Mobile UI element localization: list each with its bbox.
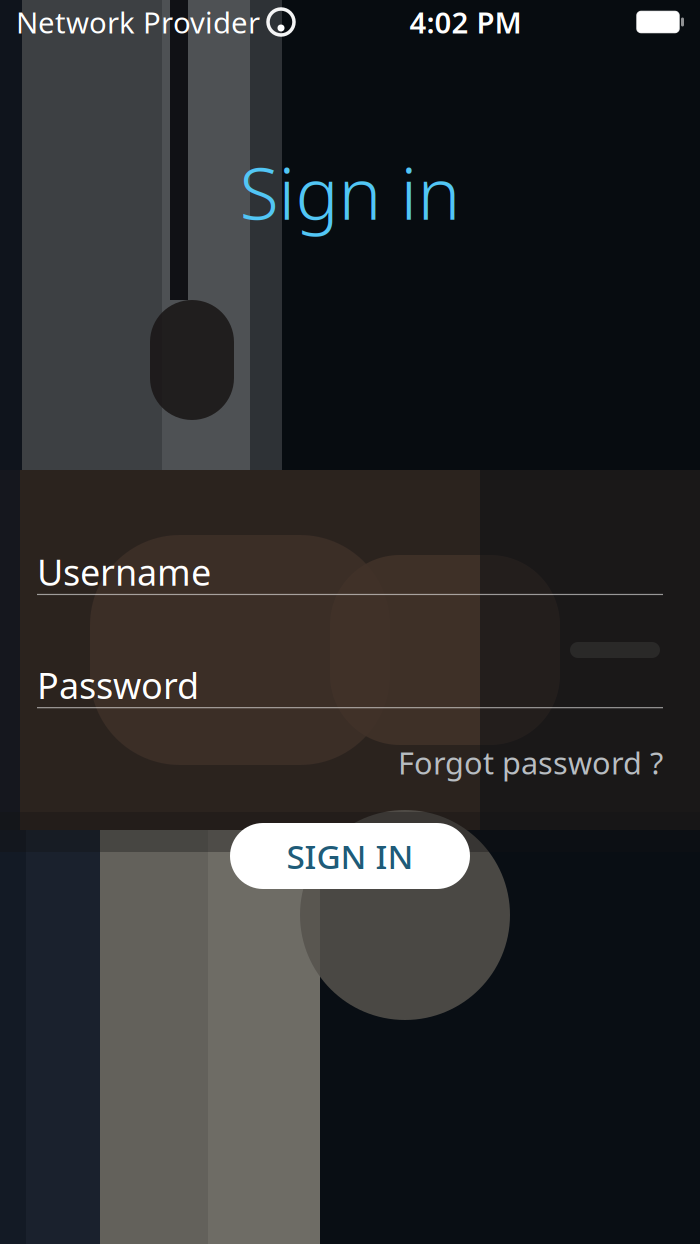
- staticText: SIGN IN: [286, 834, 413, 878]
- button[interactable]: Forgot password ?: [398, 736, 663, 789]
- button[interactable]: SIGN IN: [230, 823, 470, 889]
- staticText: Password: [37, 661, 199, 709]
- staticText: Sign in: [239, 144, 460, 240]
- staticText: Username: [37, 548, 211, 596]
- staticText: Forgot password ?: [398, 742, 663, 783]
- staticText: Network Provider: [16, 2, 260, 41]
- staticText: 4:02 PM: [409, 2, 521, 41]
